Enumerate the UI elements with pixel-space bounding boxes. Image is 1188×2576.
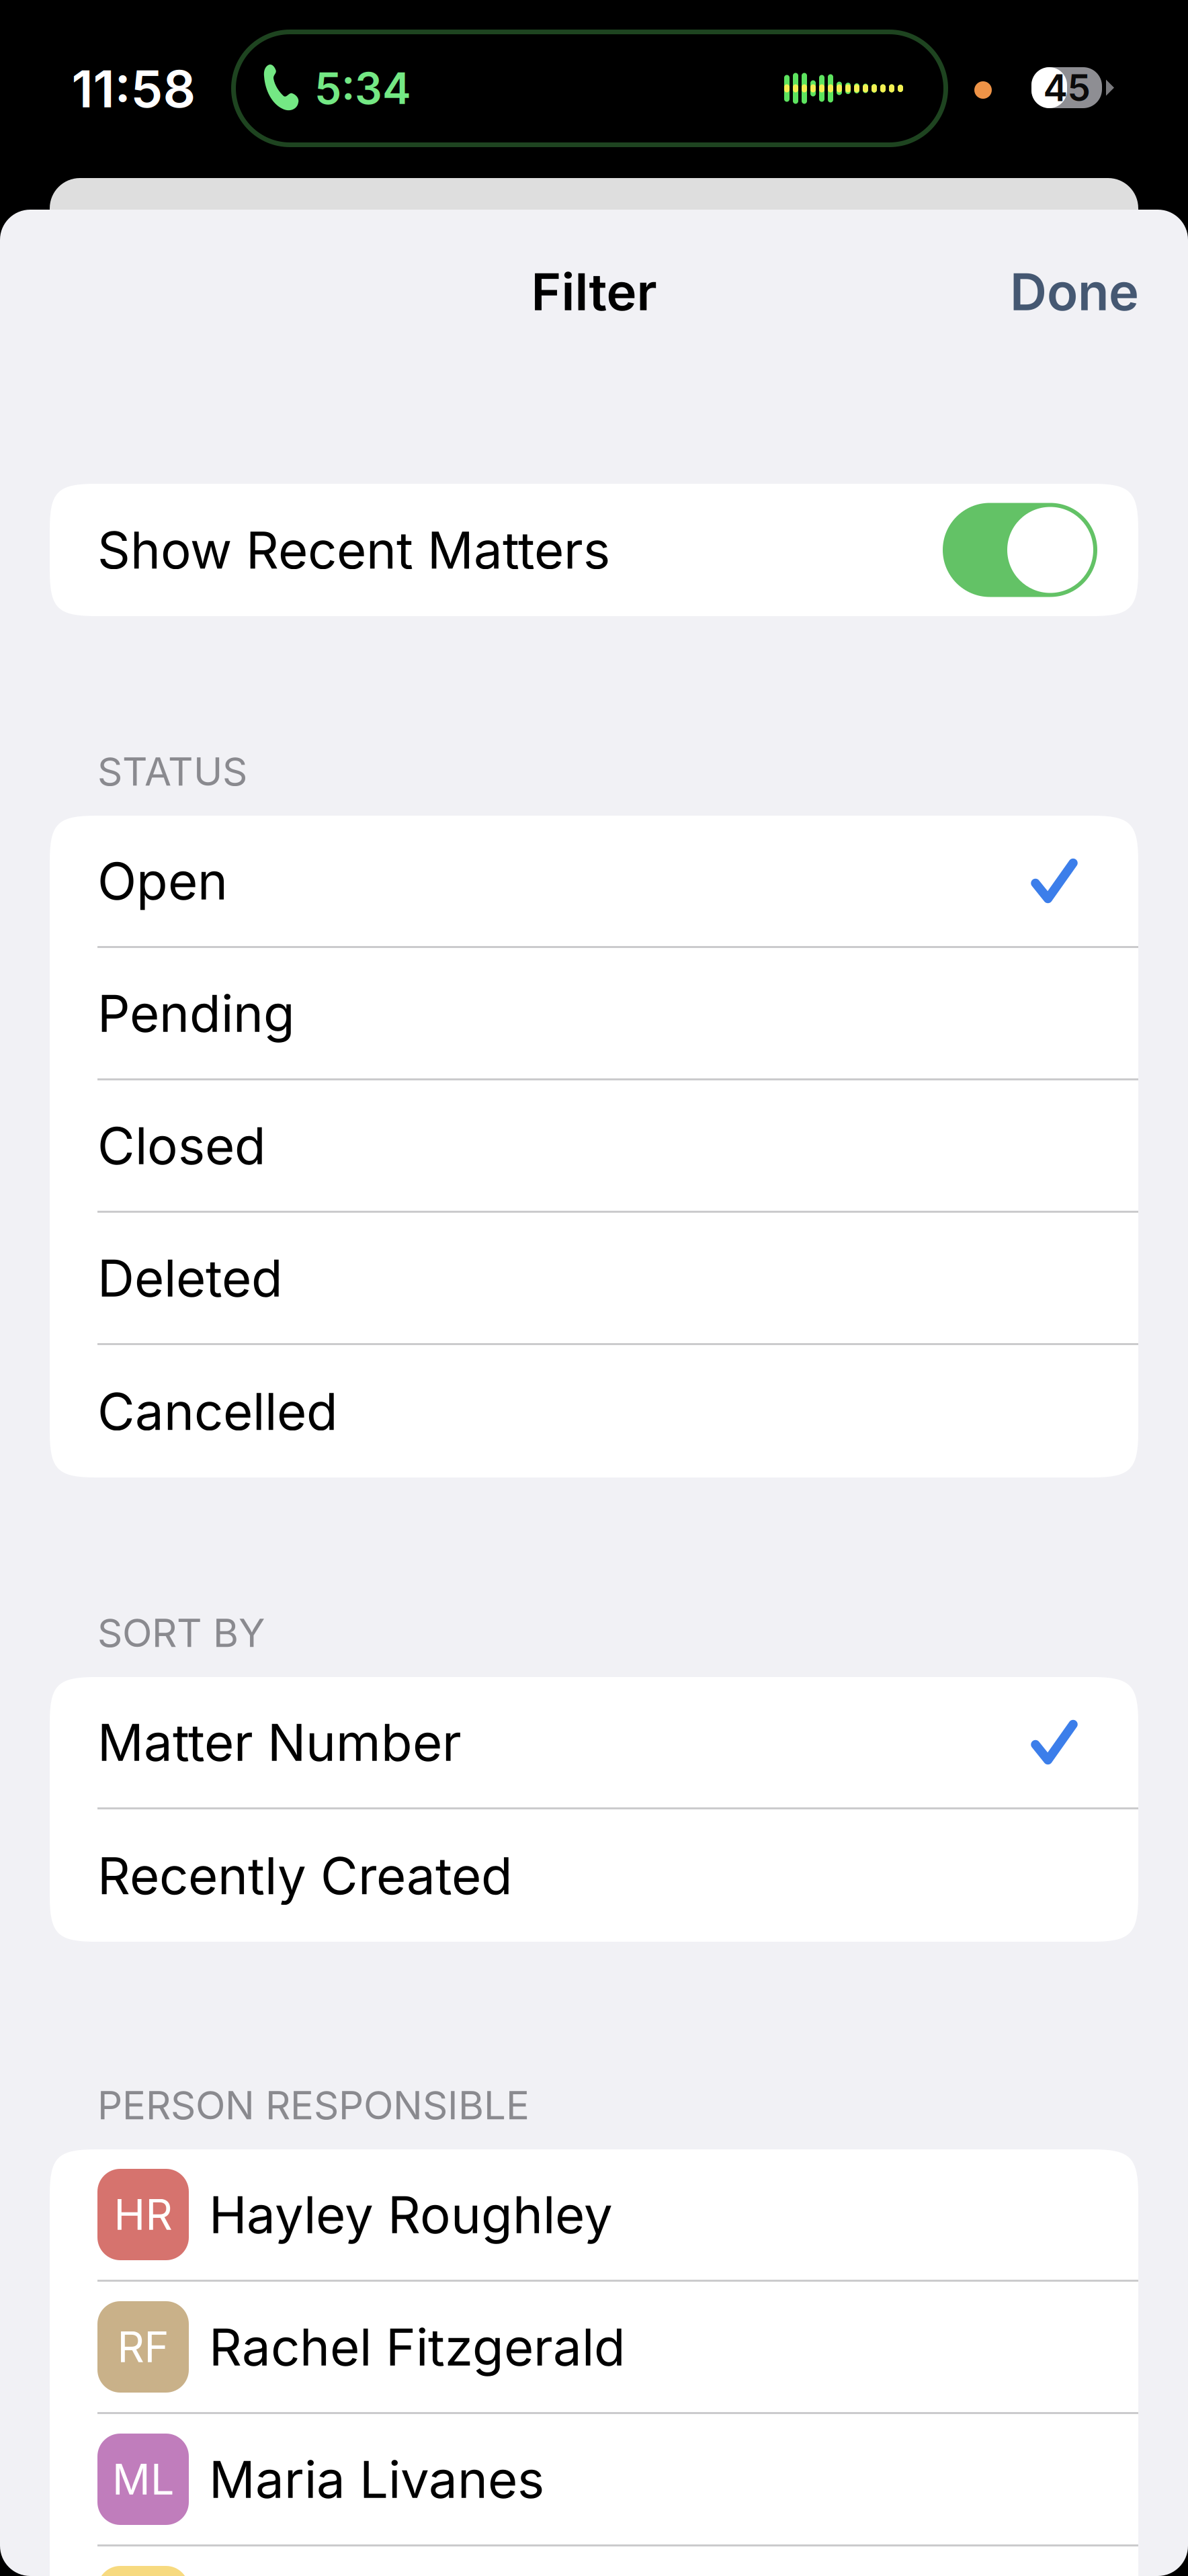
staticText: Pending <box>97 982 295 1044</box>
staticText: Rachel Fitzgerald <box>209 2316 626 2378</box>
staticText: Open <box>97 850 228 912</box>
staticText: 45 <box>1043 65 1090 110</box>
staticText: 11:58 <box>72 58 196 120</box>
button[interactable]: Show Recent Matters <box>50 484 1138 616</box>
staticText: Matter Number <box>97 1711 462 1773</box>
button[interactable]: Matter Number <box>50 1677 1138 1807</box>
staticText: Deleted <box>97 1247 283 1309</box>
staticText: STATUS <box>97 748 247 795</box>
staticText: Closed <box>97 1115 266 1176</box>
button[interactable]: SW <box>50 2546 1138 2576</box>
staticText: Show Recent Matters <box>97 519 610 581</box>
staticText: RF <box>117 2321 169 2372</box>
staticText: Done <box>1010 261 1139 322</box>
button[interactable]: Pending <box>50 948 1138 1078</box>
staticText: 5:34 <box>314 62 411 114</box>
button[interactable]: Deleted <box>50 1213 1138 1343</box>
staticText: Cancelled <box>97 1380 338 1442</box>
staticText: SORT BY <box>97 1609 265 1656</box>
button[interactable]: Open <box>50 816 1138 946</box>
button[interactable]: Recently Created <box>50 1809 1138 1942</box>
staticText: Hayley Roughley <box>209 2184 613 2245</box>
button[interactable]: ML <box>50 2414 1138 2544</box>
staticText: Maria Livanes <box>209 2448 544 2510</box>
staticText: HR <box>114 2189 172 2240</box>
staticText: ML <box>112 2454 174 2505</box>
staticText: Recently Created <box>97 1845 513 1906</box>
button[interactable]: Done <box>986 241 1163 343</box>
button[interactable]: Closed <box>50 1080 1138 1211</box>
staticText: PERSON RESPONSIBLE <box>97 2081 529 2129</box>
button[interactable]: Cancelled <box>50 1345 1138 1477</box>
staticText: Filter <box>531 261 657 322</box>
button[interactable]: HR <box>50 2149 1138 2280</box>
button[interactable]: RF <box>50 2282 1138 2412</box>
